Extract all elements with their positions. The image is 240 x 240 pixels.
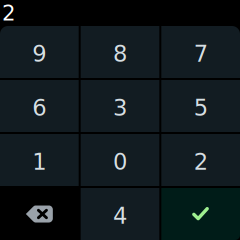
button[interactable]: 2 bbox=[161, 134, 240, 186]
staticText: 7 bbox=[194, 41, 208, 67]
button[interactable]: 1 bbox=[0, 134, 79, 186]
button[interactable]: 4 bbox=[81, 188, 159, 240]
button[interactable]: Delete bbox=[0, 188, 79, 240]
staticText: 2 bbox=[194, 149, 208, 175]
button[interactable]: 5 bbox=[161, 80, 240, 132]
button[interactable]: 0 bbox=[81, 134, 159, 186]
staticText: 3 bbox=[113, 95, 127, 121]
button[interactable]: Confirm bbox=[161, 188, 240, 240]
button[interactable]: 3 bbox=[81, 80, 159, 132]
staticText: 2 bbox=[2, 1, 16, 25]
staticText: 9 bbox=[32, 41, 46, 67]
staticText: 5 bbox=[194, 95, 208, 121]
button[interactable]: 8 bbox=[81, 26, 159, 78]
staticText: 0 bbox=[113, 149, 127, 175]
staticText: 4 bbox=[113, 203, 127, 229]
staticText: 8 bbox=[113, 41, 127, 67]
staticText: 1 bbox=[32, 149, 46, 175]
button[interactable]: 6 bbox=[0, 80, 79, 132]
staticText: 6 bbox=[32, 95, 46, 121]
button[interactable]: 9 bbox=[0, 26, 79, 78]
button[interactable]: 7 bbox=[161, 26, 240, 78]
